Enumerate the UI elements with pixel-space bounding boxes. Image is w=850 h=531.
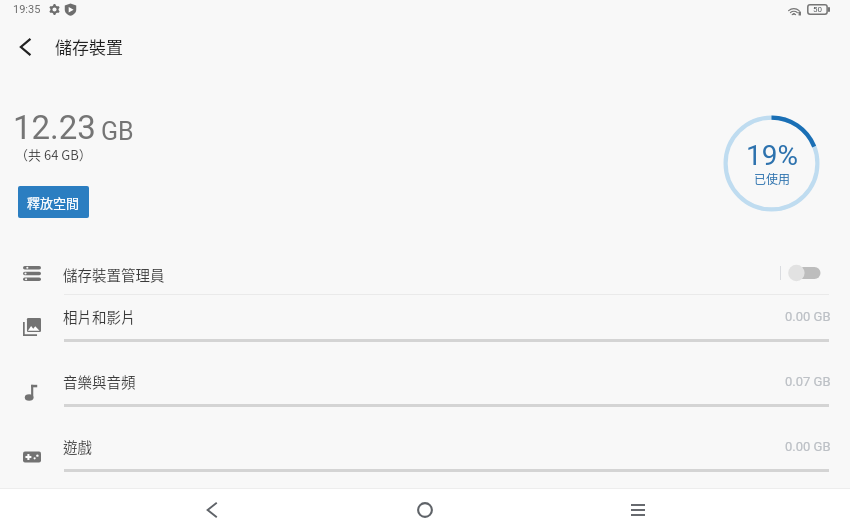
button[interactable]: Storage manager toggle (787, 263, 830, 283)
button[interactable]: 遊戲 (0, 425, 850, 490)
button[interactable]: Home (404, 489, 446, 531)
staticText: 已使用 (754, 170, 791, 187)
staticText: 0.00 GB (785, 439, 831, 454)
button[interactable]: 儲存裝置管理員 (0, 250, 850, 294)
button[interactable]: 相片和影片 (0, 295, 850, 360)
button[interactable]: Recent apps (617, 489, 659, 531)
staticText: 音樂與音頻 (63, 371, 136, 392)
staticText: 19% (746, 139, 798, 172)
staticText: 0.00 GB (785, 309, 831, 324)
staticText: 50 (813, 5, 822, 14)
staticText: 釋放空間 (27, 193, 80, 212)
staticText: 19:35 (13, 3, 41, 16)
button[interactable]: Back (191, 489, 233, 531)
staticText: 儲存裝置 (55, 34, 123, 59)
button[interactable]: 釋放空間 (18, 186, 89, 218)
button[interactable]: Back (10, 32, 42, 64)
staticText: 相片和影片 (63, 306, 136, 327)
staticText: GB (101, 117, 134, 146)
staticText: 0.07 GB (785, 374, 831, 389)
staticText: 12.23 (13, 108, 96, 147)
staticText: 儲存裝置管理員 (63, 264, 165, 285)
staticText: （共 64 GB） (15, 145, 92, 164)
staticText: 遊戲 (63, 436, 92, 457)
button[interactable]: 音樂與音頻 (0, 360, 850, 425)
